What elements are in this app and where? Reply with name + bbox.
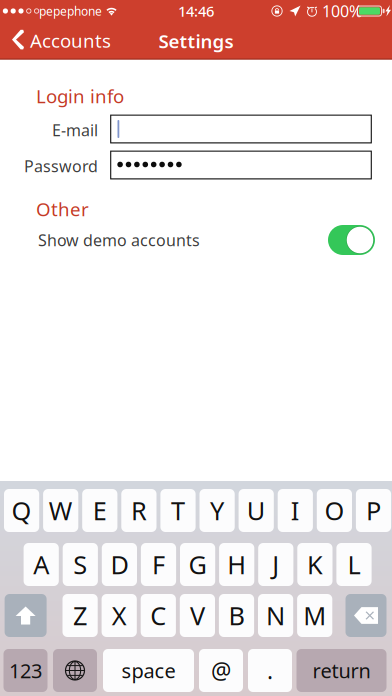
button[interactable]: Z bbox=[62, 594, 98, 637]
button[interactable]: R bbox=[121, 489, 156, 532]
button[interactable]: J bbox=[258, 543, 293, 586]
button[interactable]: F bbox=[141, 543, 176, 586]
button[interactable]: A bbox=[24, 543, 59, 586]
button[interactable]: Show demo accounts bbox=[328, 225, 375, 255]
staticText: B bbox=[228, 599, 244, 632]
button[interactable]: H bbox=[219, 543, 254, 586]
staticText: S bbox=[73, 548, 87, 581]
button[interactable]: . bbox=[248, 649, 292, 692]
staticText: F bbox=[152, 548, 165, 581]
button[interactable]: Shift bbox=[5, 594, 47, 637]
staticText: G bbox=[189, 548, 207, 581]
button[interactable]: X bbox=[102, 594, 137, 637]
button[interactable]: O bbox=[317, 489, 352, 532]
staticText: T bbox=[171, 494, 185, 527]
button[interactable]: T bbox=[160, 489, 196, 532]
button[interactable]: I bbox=[278, 489, 313, 532]
button[interactable]: Next keyboard bbox=[53, 649, 97, 692]
button[interactable]: Q bbox=[4, 489, 39, 532]
staticText: Q bbox=[12, 494, 32, 527]
button[interactable]: space bbox=[103, 649, 194, 692]
staticText: P bbox=[366, 494, 381, 527]
button[interactable]: G bbox=[180, 543, 215, 586]
staticText: R bbox=[131, 494, 147, 527]
staticText: N bbox=[266, 599, 285, 632]
staticText: Show demo accounts bbox=[38, 229, 200, 251]
staticText: Accounts bbox=[30, 28, 111, 53]
button[interactable]: D bbox=[102, 543, 137, 586]
button[interactable]: P bbox=[356, 489, 391, 532]
button[interactable]: N bbox=[258, 594, 293, 637]
staticText: H bbox=[227, 548, 246, 581]
staticText: L bbox=[347, 548, 360, 581]
staticText: E bbox=[93, 494, 107, 527]
staticText: V bbox=[190, 599, 205, 632]
staticText: J bbox=[272, 548, 279, 581]
staticText: 14:46 bbox=[178, 1, 214, 21]
staticText: pepephone bbox=[39, 3, 102, 19]
button[interactable]: E bbox=[82, 489, 117, 532]
staticText: . bbox=[267, 655, 273, 685]
staticText: M bbox=[303, 599, 326, 632]
staticText: 100% bbox=[322, 0, 362, 22]
staticText: I bbox=[291, 494, 300, 527]
button[interactable]: Delete bbox=[345, 594, 386, 637]
staticText: Password bbox=[24, 155, 98, 177]
staticText: Y bbox=[210, 494, 224, 527]
button[interactable]: return bbox=[296, 649, 386, 692]
button[interactable]: @ bbox=[199, 649, 243, 692]
button[interactable]: K bbox=[297, 543, 332, 586]
staticText: @ bbox=[211, 655, 231, 685]
staticText: D bbox=[110, 548, 128, 581]
button[interactable]: L bbox=[336, 543, 372, 586]
staticText: X bbox=[112, 599, 127, 632]
staticText: 123 bbox=[9, 657, 42, 684]
staticText: E-mail bbox=[52, 119, 98, 141]
staticText: space bbox=[121, 657, 175, 684]
button[interactable]: M bbox=[297, 594, 332, 637]
staticText: Settings bbox=[158, 29, 233, 53]
button[interactable]: U bbox=[239, 489, 274, 532]
staticText: Login info bbox=[36, 84, 124, 108]
button[interactable]: V bbox=[180, 594, 215, 637]
button[interactable]: 123 bbox=[3, 649, 47, 692]
staticText: Z bbox=[73, 599, 87, 632]
staticText: U bbox=[247, 494, 266, 527]
button[interactable]: C bbox=[141, 594, 176, 637]
button[interactable]: S bbox=[63, 543, 98, 586]
staticText: A bbox=[33, 548, 49, 581]
button[interactable]: Y bbox=[199, 489, 235, 532]
staticText: C bbox=[150, 599, 166, 632]
staticText: Other bbox=[36, 197, 89, 221]
button[interactable]: W bbox=[43, 489, 78, 532]
staticText: return bbox=[312, 657, 370, 684]
button[interactable]: Accounts bbox=[0, 22, 110, 57]
staticText: W bbox=[49, 494, 73, 527]
staticText: K bbox=[307, 548, 323, 581]
button[interactable]: B bbox=[219, 594, 254, 637]
staticText: O bbox=[324, 494, 344, 527]
